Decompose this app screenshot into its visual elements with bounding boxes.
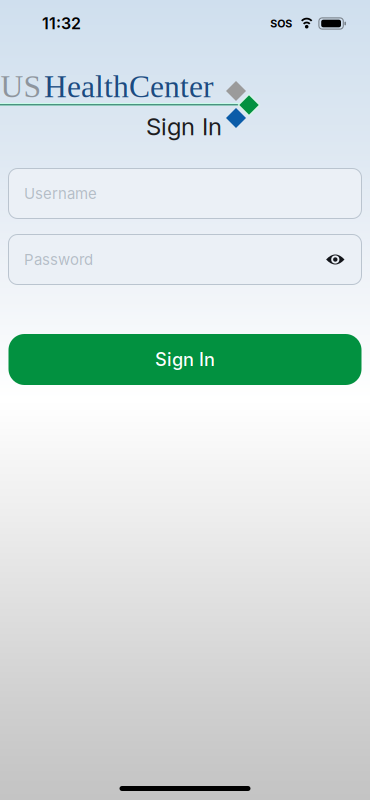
- staticText: HealthCenter: [44, 69, 214, 104]
- button[interactable]: Sign In: [8, 334, 361, 385]
- staticText: Sign In: [155, 348, 215, 370]
- button[interactable]: Username: [8, 168, 361, 218]
- staticText: SOS: [270, 17, 292, 30]
- button[interactable]: Password: [8, 234, 361, 284]
- staticText: Password: [24, 250, 93, 269]
- staticText: 11:32: [42, 14, 81, 33]
- staticText: Username: [24, 184, 97, 203]
- staticText: US: [0, 69, 41, 104]
- staticText: Sign In: [146, 112, 222, 141]
